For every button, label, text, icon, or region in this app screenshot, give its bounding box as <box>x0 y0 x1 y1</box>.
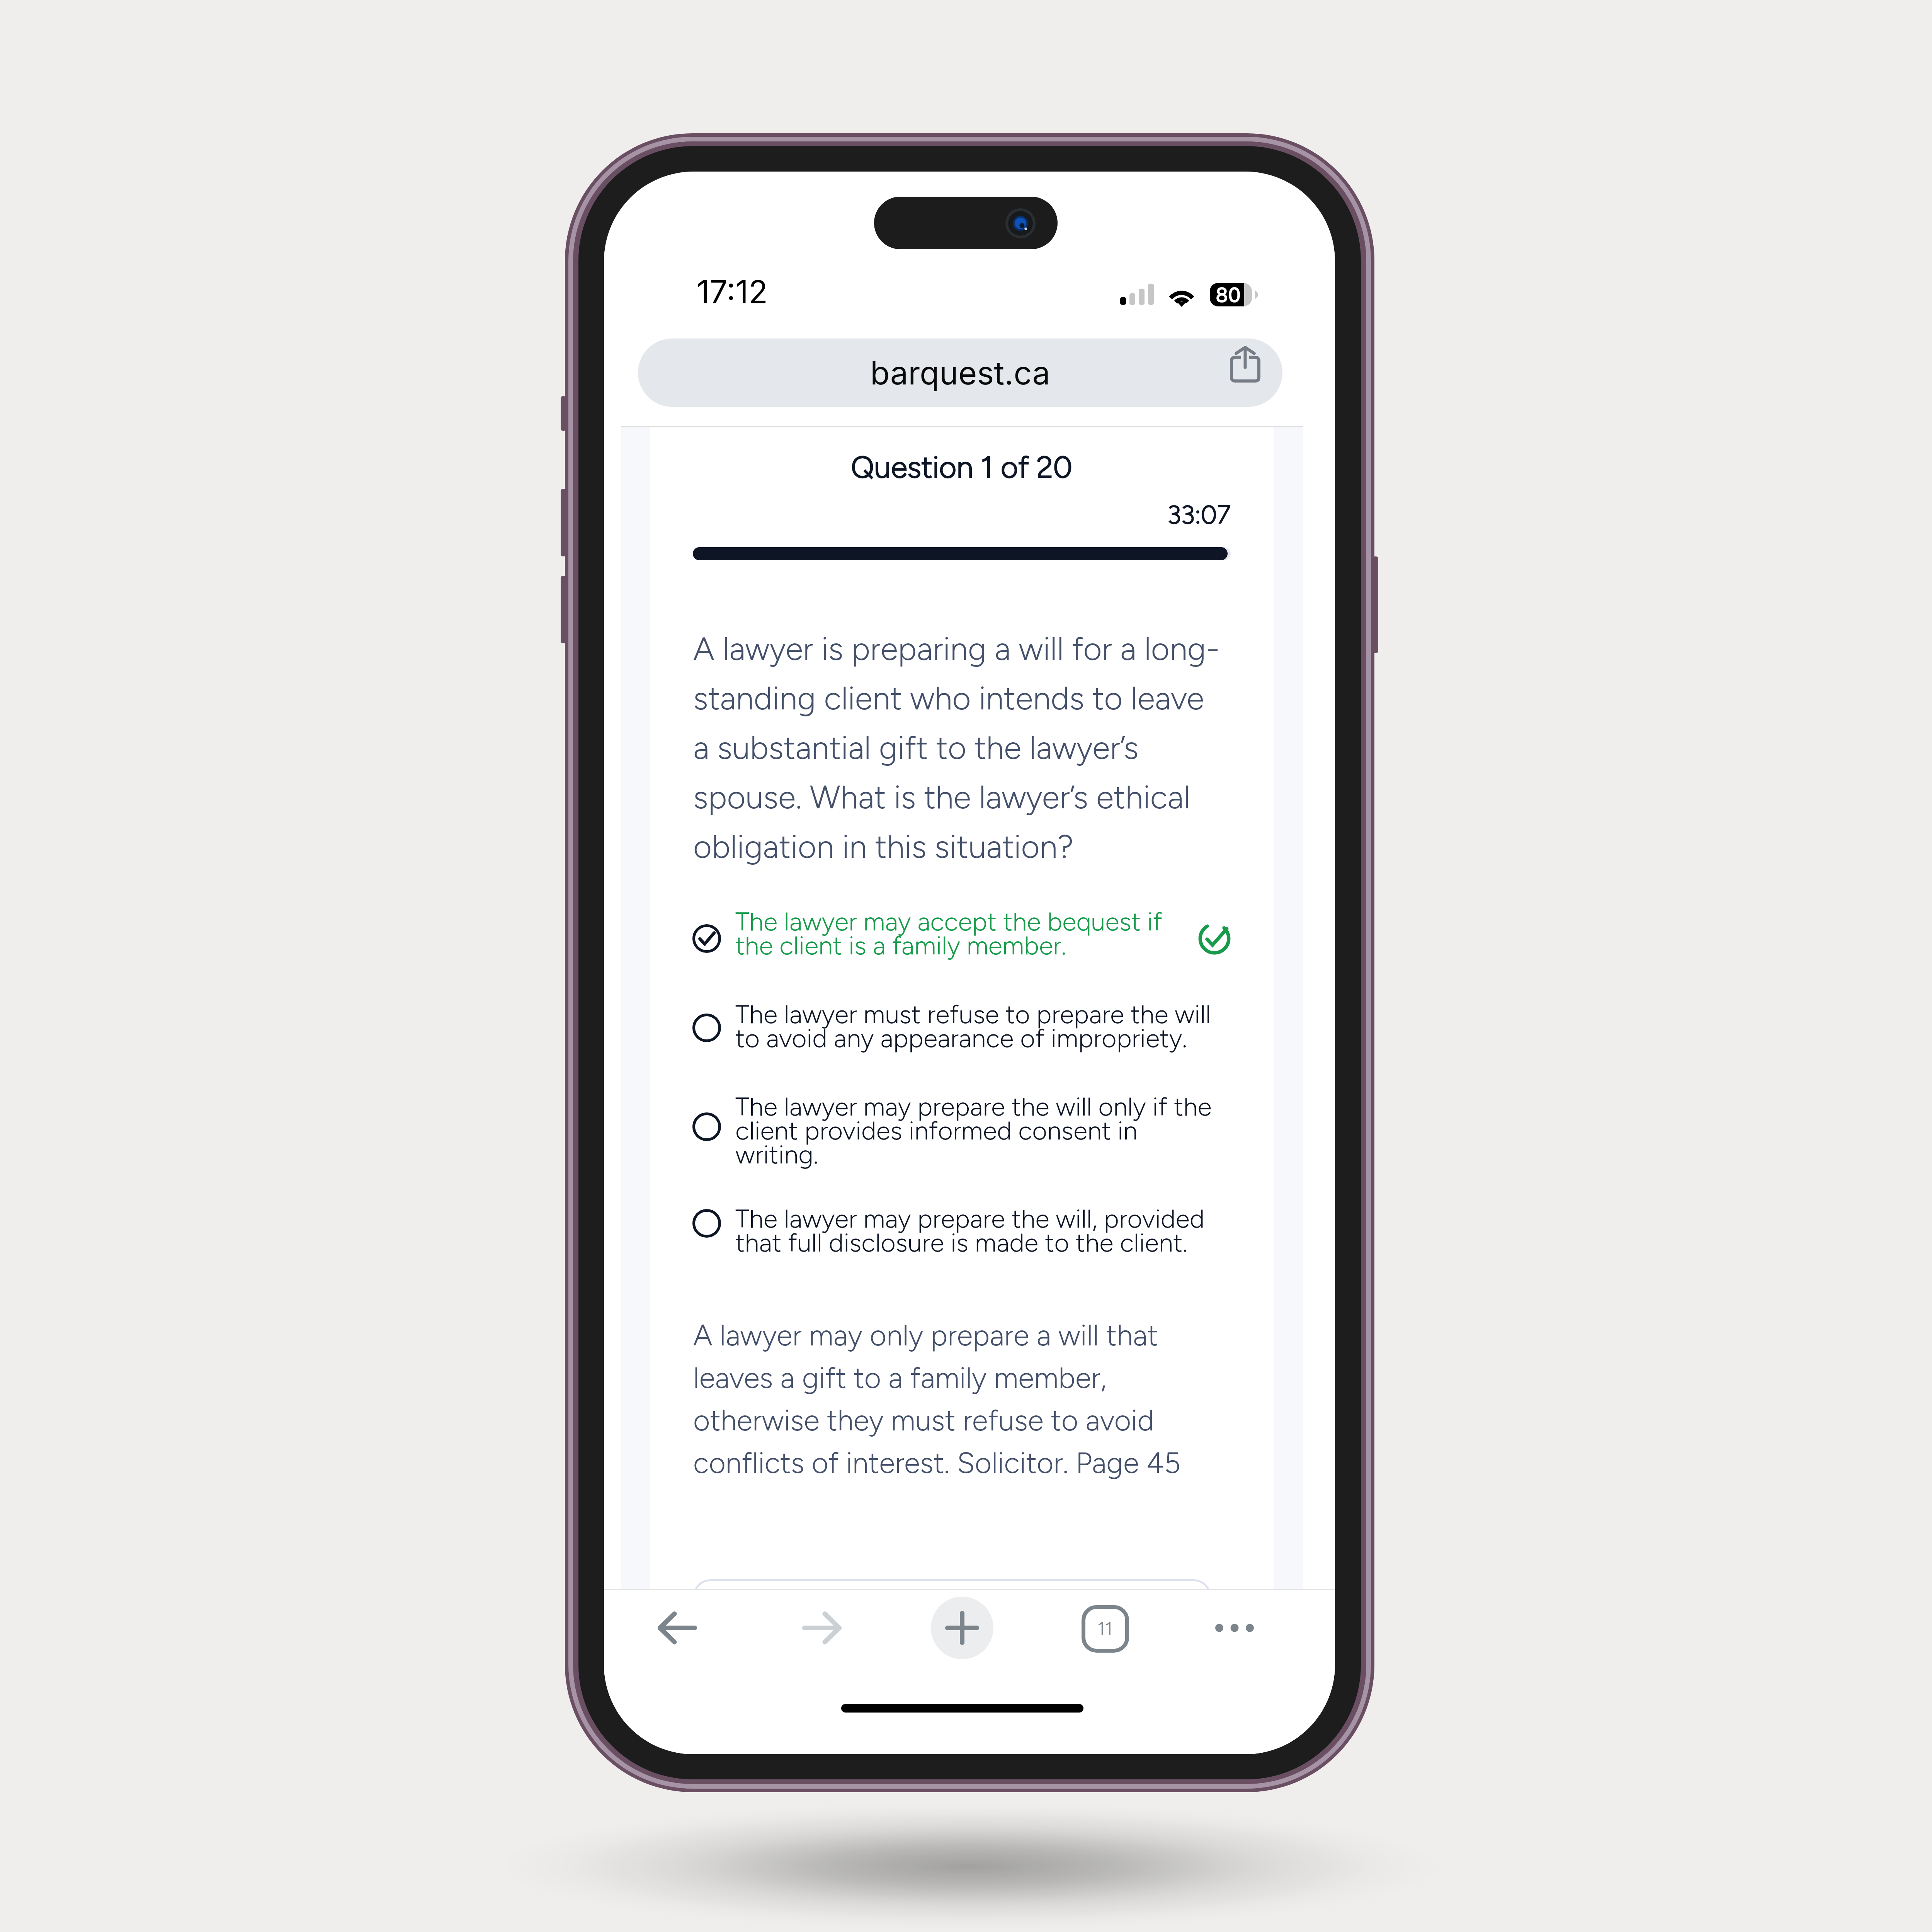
staticText: A lawyer may only prepare a will that le… <box>693 1318 1181 1480</box>
staticText: 80 <box>1216 283 1241 307</box>
staticText: barquest.ca <box>870 354 1051 392</box>
button[interactable]: More <box>1200 1605 1269 1651</box>
button[interactable]: The lawyer may accept the bequest if the… <box>673 896 1245 981</box>
staticText: The lawyer may prepare the will only if … <box>735 1091 1212 1170</box>
button[interactable]: barquest.ca <box>638 338 1282 407</box>
button[interactable]: The lawyer may prepare the will only if … <box>673 1084 1245 1169</box>
button[interactable]: Back <box>650 1605 704 1651</box>
button[interactable]: New tab <box>931 1597 993 1659</box>
button[interactable]: Forward <box>795 1605 849 1651</box>
staticText: The lawyer may prepare the will, provide… <box>735 1203 1205 1258</box>
button[interactable]: The lawyer may prepare the will, provide… <box>673 1181 1245 1266</box>
button[interactable]: Share <box>1216 334 1275 393</box>
button[interactable]: Tabs <box>1072 1595 1138 1662</box>
staticText: Question 1 of 20 <box>851 449 1073 485</box>
staticText: The lawyer must refuse to prepare the wi… <box>735 999 1211 1054</box>
staticText: 11 <box>1097 1617 1113 1640</box>
staticText: The lawyer may accept the bequest if the… <box>735 906 1162 961</box>
button[interactable]: The lawyer must refuse to prepare the wi… <box>673 985 1245 1070</box>
staticText: 33:07 <box>1167 499 1231 530</box>
staticText: A lawyer is preparing a will for a long-… <box>693 629 1220 866</box>
staticText: 17:12 <box>697 273 768 311</box>
